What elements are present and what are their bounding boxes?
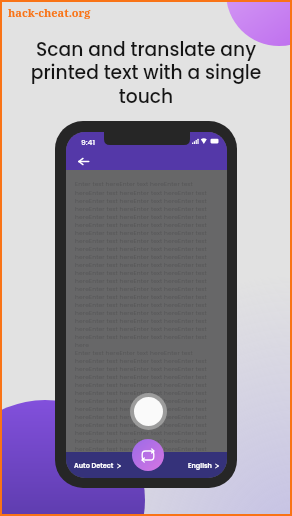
staticText: English: [188, 461, 212, 470]
staticText: Enter text hereEnter text hereEnter text…: [75, 180, 219, 478]
staticText: hack-cheat.org: [8, 5, 91, 20]
button[interactable]: Auto Detect: [74, 461, 121, 470]
button[interactable]: Back: [74, 152, 92, 170]
button[interactable]: Capture: [130, 393, 167, 430]
button[interactable]: Swap languages: [132, 439, 164, 471]
button[interactable]: English: [188, 461, 219, 470]
staticText: 9:41: [81, 137, 96, 147]
staticText: Scan and translate any printed text with…: [20, 36, 272, 110]
staticText: Auto Detect: [74, 461, 114, 470]
